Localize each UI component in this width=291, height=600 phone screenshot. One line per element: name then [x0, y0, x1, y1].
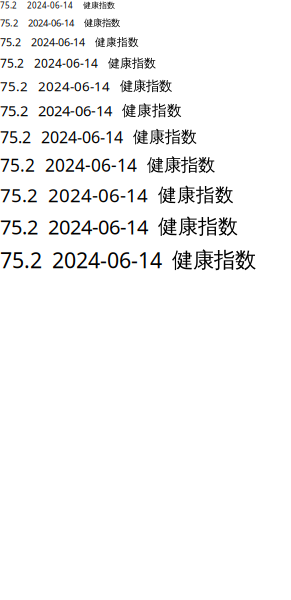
- staticText: 2024-06-14: [27, 0, 73, 11]
- staticText: 75.2: [0, 77, 28, 95]
- staticText: 2024-06-14: [45, 154, 137, 177]
- staticText: 2024-06-14: [28, 17, 74, 29]
- staticText: 2024-06-14: [48, 183, 148, 207]
- staticText: 健康指数: [122, 102, 182, 120]
- staticText: 75.2: [0, 101, 28, 120]
- staticText: 2024-06-14: [31, 35, 85, 49]
- staticText: 健康指数: [120, 78, 172, 94]
- staticText: 75.2: [0, 17, 18, 29]
- staticText: 75.2: [0, 126, 31, 147]
- staticText: 健康指数: [133, 127, 197, 147]
- staticText: 75.2: [0, 0, 17, 11]
- staticText: 2024-06-14: [41, 126, 123, 147]
- staticText: 健康指数: [108, 56, 156, 70]
- staticText: 健康指数: [83, 0, 115, 10]
- staticText: 健康指数: [95, 35, 139, 49]
- staticText: 2024-06-14: [48, 213, 148, 240]
- staticText: 健康指数: [158, 214, 238, 239]
- staticText: 2024-06-14: [38, 77, 110, 95]
- staticText: 健康指数: [172, 247, 256, 273]
- staticText: 健康指数: [147, 154, 215, 176]
- staticText: 健康指数: [84, 17, 120, 29]
- staticText: 2024-06-14: [52, 246, 162, 274]
- staticText: 75.2: [0, 35, 21, 49]
- staticText: 75.2: [0, 154, 35, 177]
- staticText: 75.2: [0, 213, 38, 240]
- staticText: 75.2: [0, 183, 38, 207]
- staticText: 2024-06-14: [38, 101, 112, 120]
- staticText: 2024-06-14: [34, 55, 98, 71]
- staticText: 健康指数: [158, 183, 234, 206]
- staticText: 75.2: [0, 55, 24, 71]
- staticText: 75.2: [0, 246, 42, 274]
